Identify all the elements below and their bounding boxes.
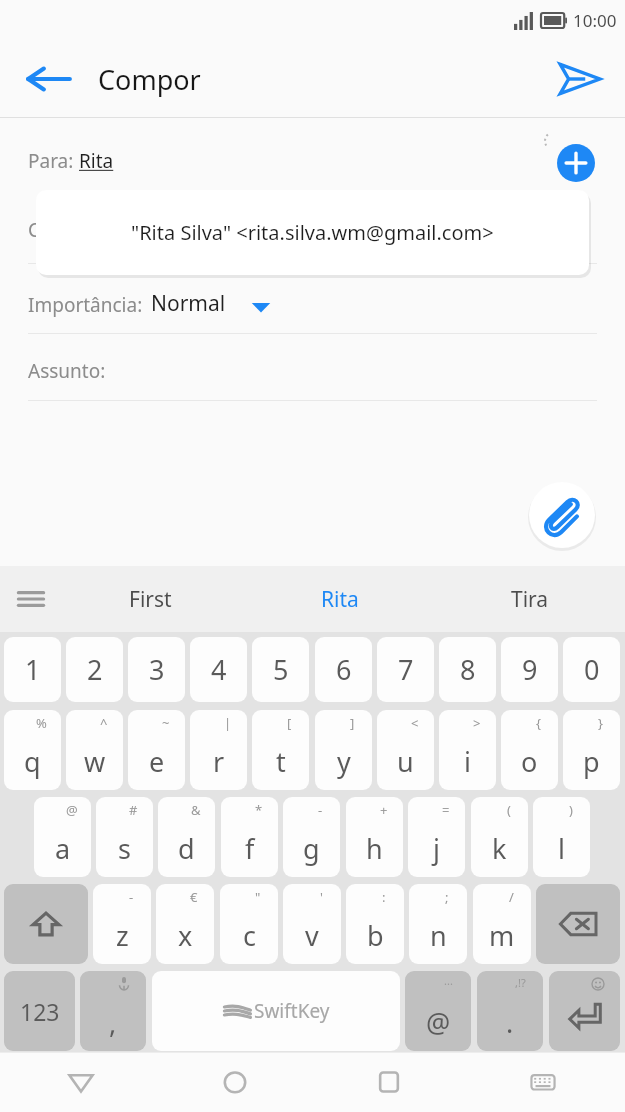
button[interactable]: 123	[4, 971, 75, 1051]
staticText: 0	[584, 651, 600, 688]
button[interactable]: %	[4, 710, 61, 790]
button[interactable]: ;	[409, 884, 467, 964]
staticText: 7	[398, 651, 414, 688]
staticText: |	[224, 714, 232, 732]
button[interactable]: "Rita Silva" <rita.silva.wm@gmail.com>	[36, 190, 589, 275]
staticText: Normal	[151, 289, 226, 318]
button[interactable]: /	[473, 884, 531, 964]
button[interactable]: -	[93, 884, 151, 964]
button[interactable]: Importância:	[28, 289, 272, 318]
staticText: €	[190, 888, 198, 906]
button[interactable]: >	[439, 710, 496, 790]
staticText: @	[66, 801, 78, 819]
staticText: '	[320, 888, 323, 906]
button[interactable]: 0	[563, 637, 620, 702]
staticText: t	[276, 743, 286, 780]
staticText: Compor	[98, 61, 201, 98]
button[interactable]: Rita	[245, 566, 435, 632]
button[interactable]: <	[377, 710, 434, 790]
staticText: 6	[336, 651, 352, 688]
button[interactable]: Recents	[366, 1059, 412, 1105]
staticText: .	[506, 1004, 514, 1041]
staticText: Para:	[28, 148, 79, 174]
staticText: 8	[460, 651, 476, 688]
button[interactable]: Tira	[435, 566, 625, 632]
staticText: (	[507, 801, 511, 819]
button[interactable]: 4	[190, 637, 247, 702]
button[interactable]: @	[34, 797, 91, 877]
button[interactable]: 5	[252, 637, 309, 702]
button[interactable]: &	[158, 797, 215, 877]
button[interactable]: (	[471, 797, 528, 877]
button[interactable]: Send	[553, 53, 605, 105]
staticText: 1	[25, 651, 41, 688]
button[interactable]: Enter	[549, 971, 620, 1051]
staticText: x	[178, 917, 193, 954]
button[interactable]: 7	[377, 637, 434, 702]
button[interactable]: #	[96, 797, 153, 877]
staticText: h	[366, 830, 383, 867]
button[interactable]: +	[346, 797, 403, 877]
button[interactable]: ~	[128, 710, 185, 790]
button[interactable]: [	[252, 710, 309, 790]
staticText: %	[36, 714, 47, 732]
staticText: 4	[211, 651, 227, 688]
button[interactable]: 9	[501, 637, 558, 702]
button[interactable]: |	[190, 710, 247, 790]
staticText: s	[118, 830, 131, 867]
button[interactable]: {	[501, 710, 558, 790]
button[interactable]: *	[221, 797, 278, 877]
button[interactable]: ]	[315, 710, 372, 790]
button[interactable]: Attach file	[528, 481, 596, 549]
staticText: n	[430, 917, 447, 954]
button[interactable]: ,!?	[477, 971, 543, 1051]
button[interactable]: Shift	[4, 884, 88, 964]
button[interactable]: ,	[80, 971, 146, 1051]
button[interactable]: 8	[439, 637, 496, 702]
button[interactable]: Space	[152, 971, 400, 1051]
button[interactable]: )	[533, 797, 590, 877]
button[interactable]: 1	[4, 637, 61, 702]
button[interactable]: '	[283, 884, 341, 964]
button[interactable]: Back	[22, 53, 74, 105]
staticText: 9	[522, 651, 538, 688]
button[interactable]: :	[346, 884, 404, 964]
staticText: u	[397, 743, 414, 780]
staticText: ,	[109, 1004, 117, 1041]
staticText: &	[191, 801, 201, 819]
staticText: -	[318, 801, 323, 819]
button[interactable]: 6	[315, 637, 372, 702]
button[interactable]: 3	[128, 637, 185, 702]
button[interactable]: 2	[66, 637, 123, 702]
button[interactable]: Home	[212, 1059, 258, 1105]
button[interactable]: Backspace	[536, 884, 620, 964]
staticText: b	[367, 917, 384, 954]
button[interactable]: }	[563, 710, 620, 790]
button[interactable]: ^	[66, 710, 123, 790]
staticText: c	[243, 917, 256, 954]
staticText: w	[84, 743, 106, 780]
button[interactable]: First	[56, 566, 245, 632]
staticText: 123	[20, 996, 60, 1027]
staticText: j	[433, 830, 440, 867]
button[interactable]: Para:	[28, 148, 114, 174]
button[interactable]: Back	[58, 1059, 104, 1105]
staticText: ]	[350, 714, 355, 732]
staticText: r	[213, 743, 225, 780]
staticText: ...	[444, 973, 453, 988]
button[interactable]: Hide keyboard	[520, 1059, 566, 1105]
staticText: ^	[100, 714, 108, 732]
staticText: *	[255, 801, 263, 819]
staticText: SwiftKey	[254, 998, 330, 1024]
button[interactable]: Keyboard menu	[10, 578, 52, 620]
button[interactable]: -	[283, 797, 340, 877]
staticText: :	[382, 888, 386, 906]
button[interactable]: "	[220, 884, 278, 964]
button[interactable]: Add recipient	[557, 144, 595, 182]
staticText: -	[129, 888, 134, 906]
button[interactable]: =	[408, 797, 465, 877]
staticText: First	[129, 585, 172, 614]
button[interactable]: €	[156, 884, 214, 964]
staticText: q	[24, 743, 41, 780]
button[interactable]: ...	[405, 971, 471, 1051]
